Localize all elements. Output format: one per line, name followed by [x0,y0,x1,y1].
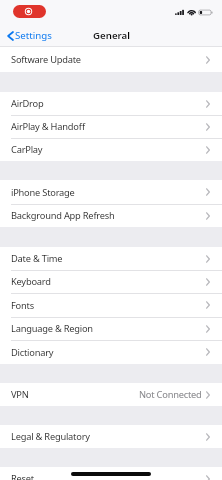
button[interactable]: Legal & Regulatory [0,425,222,448]
staticText: Software Update [11,53,81,66]
staticText: AirDrop [11,97,44,110]
button[interactable]: Software Update [0,47,222,72]
staticText: VPN [11,388,29,401]
staticText: Dictionary [11,346,54,359]
other: Screen recording [13,5,46,18]
staticText: Background App Refresh [11,209,115,222]
button[interactable]: CarPlay [0,138,222,161]
staticText: Reset [11,472,34,480]
button[interactable]: Fonts [0,293,222,317]
staticText: General [93,29,130,42]
staticText: Language & Region [11,322,93,335]
staticText: Keyboard [11,275,51,288]
staticText: Not Connected [139,388,202,401]
button[interactable]: Settings [0,26,57,45]
staticText: Fonts [11,299,34,312]
button[interactable]: iPhone Storage [0,180,222,204]
button[interactable]: Reset [0,467,222,480]
button[interactable]: VPN [0,383,222,406]
button[interactable]: Date & Time [0,247,222,270]
button[interactable]: Background App Refresh [0,204,222,227]
staticText: Date & Time [11,252,63,265]
button[interactable]: AirPlay & Handoff [0,115,222,138]
staticText: Legal & Regulatory [11,430,90,443]
button[interactable]: Keyboard [0,270,222,293]
button[interactable]: Dictionary [0,340,222,364]
staticText: iPhone Storage [11,186,75,199]
staticText: Settings [15,29,52,42]
staticText: CarPlay [11,143,43,156]
button[interactable]: Language & Region [0,317,222,340]
button[interactable]: AirDrop [0,92,222,115]
staticText: AirPlay & Handoff [11,120,85,133]
